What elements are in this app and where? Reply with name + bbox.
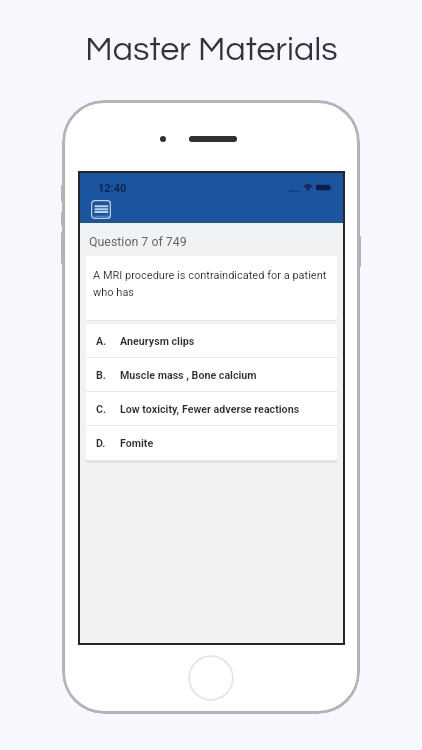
staticText: A MRI procedure is contraindicated for a…: [93, 269, 331, 299]
staticText: 12:40: [98, 182, 127, 195]
staticText: A.: [96, 335, 107, 348]
staticText: Question 7 of 749: [89, 234, 187, 249]
staticText: Aneurysm clips: [120, 335, 195, 348]
staticText: Master Materials: [85, 32, 338, 67]
staticText: B.: [96, 369, 106, 382]
staticText: D.: [96, 437, 106, 450]
staticText: Fomite: [120, 437, 154, 450]
button[interactable]: A.: [86, 324, 337, 358]
button[interactable]: D.: [86, 426, 337, 460]
staticText: Muscle mass , Bone calcium: [120, 369, 257, 382]
staticText: C.: [96, 403, 107, 416]
button[interactable]: B.: [86, 358, 337, 392]
staticText: Low toxicity, Fewer adverse reactions: [120, 403, 300, 416]
button[interactable]: Open navigation menu: [91, 200, 111, 219]
button[interactable]: C.: [86, 392, 337, 426]
